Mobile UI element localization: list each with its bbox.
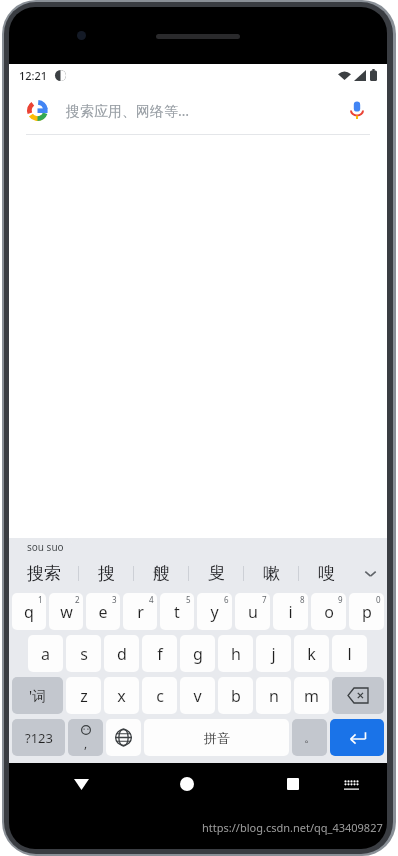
button[interactable]: a — [28, 635, 63, 672]
button[interactable]: , — [68, 719, 103, 756]
staticText: 。 — [304, 730, 316, 745]
button[interactable]: w — [49, 593, 83, 630]
button[interactable]: Enter — [330, 719, 384, 756]
button[interactable]: x — [104, 677, 139, 714]
staticText: 8 — [300, 594, 305, 605]
button[interactable]: 嗖 — [299, 556, 353, 590]
staticText: p — [362, 601, 372, 623]
staticText: o — [324, 601, 334, 623]
button[interactable]: Switch language — [106, 719, 141, 756]
button[interactable]: p — [349, 593, 384, 630]
button[interactable]: h — [218, 635, 253, 672]
staticText: q — [24, 601, 34, 623]
button[interactable]: y — [197, 593, 232, 630]
button[interactable]: Home — [170, 767, 204, 801]
button[interactable]: g — [180, 635, 215, 672]
button[interactable]: 艘 — [134, 556, 188, 590]
staticText: 搜索应用、网络等… — [66, 101, 190, 120]
staticText: 搜索 — [27, 563, 61, 584]
staticText: j — [271, 643, 276, 665]
staticText: 0 — [376, 594, 381, 605]
staticText: r — [137, 601, 144, 623]
staticText: 4 — [149, 594, 154, 605]
button[interactable]: n — [256, 677, 291, 714]
button[interactable]: 叟 — [189, 556, 243, 590]
button[interactable]: z — [66, 677, 101, 714]
staticText: s — [80, 643, 88, 665]
button[interactable]: More candidates — [353, 556, 387, 590]
button[interactable]: o — [311, 593, 346, 630]
staticText: i — [288, 601, 293, 623]
button[interactable]: Hide keyboard — [64, 767, 98, 801]
staticText: f — [157, 643, 163, 665]
button[interactable]: Backspace — [332, 677, 384, 714]
staticText: 搜 — [98, 563, 115, 584]
staticText: 嗽 — [263, 563, 280, 584]
staticText: sou suo — [27, 540, 64, 554]
button[interactable]: i — [273, 593, 308, 630]
staticText: d — [117, 643, 127, 665]
button[interactable]: Recent apps — [276, 767, 310, 801]
staticText: 9 — [338, 594, 343, 605]
staticText: m — [304, 685, 319, 707]
button[interactable]: e — [86, 593, 120, 630]
staticText: 嗖 — [318, 563, 335, 584]
button[interactable]: l — [332, 635, 367, 672]
button[interactable]: q — [12, 593, 46, 630]
staticText: 3 — [112, 594, 117, 605]
button[interactable]: f — [142, 635, 177, 672]
staticText: h — [231, 643, 241, 665]
staticText: t — [174, 601, 180, 623]
staticText: https://blog.csdn.net/qq_43409827 — [202, 820, 383, 835]
button[interactable]: b — [218, 677, 253, 714]
button[interactable]: 。 — [292, 719, 327, 756]
staticText: c — [156, 685, 164, 707]
staticText: n — [269, 685, 279, 707]
button[interactable]: s — [66, 635, 101, 672]
button[interactable]: u — [235, 593, 270, 630]
button[interactable]: k — [294, 635, 329, 672]
button[interactable]: 搜索 — [9, 556, 78, 590]
staticText: 7 — [262, 594, 267, 605]
button[interactable]: v — [180, 677, 215, 714]
staticText: u — [248, 601, 258, 623]
button[interactable]: Change keyboard — [336, 769, 366, 799]
staticText: 5 — [186, 594, 191, 605]
staticText: w — [60, 601, 73, 623]
button[interactable]: r — [123, 593, 157, 630]
button[interactable]: 搜索应用、网络等… — [9, 86, 387, 134]
staticText: z — [80, 685, 88, 707]
staticText: k — [307, 643, 316, 665]
staticText: ?123 — [25, 729, 53, 747]
button[interactable]: Voice search — [345, 98, 369, 122]
button[interactable]: 拼音 — [144, 719, 289, 756]
staticText: g — [193, 643, 203, 665]
staticText: 艘 — [153, 563, 170, 584]
button[interactable]: 搜 — [79, 556, 133, 590]
staticText: b — [231, 685, 241, 707]
staticText: , — [84, 735, 88, 751]
staticText: y — [210, 601, 219, 623]
button[interactable]: c — [142, 677, 177, 714]
staticText: 1 — [38, 594, 43, 605]
staticText: '词 — [29, 686, 47, 705]
staticText: 12:21 — [19, 68, 48, 83]
staticText: l — [347, 643, 352, 665]
staticText: 2 — [75, 594, 80, 605]
staticText: e — [98, 601, 108, 623]
button[interactable]: d — [104, 635, 139, 672]
staticText: a — [41, 643, 50, 665]
button[interactable]: '词 — [12, 677, 63, 714]
button[interactable]: t — [160, 593, 194, 630]
staticText: 拼音 — [204, 730, 230, 746]
staticText: 6 — [224, 594, 229, 605]
button[interactable]: j — [256, 635, 291, 672]
button[interactable]: ?123 — [12, 719, 65, 756]
button[interactable]: 嗽 — [244, 556, 298, 590]
staticText: 叟 — [208, 563, 225, 584]
staticText: v — [193, 685, 202, 707]
button[interactable]: m — [294, 677, 329, 714]
staticText: x — [117, 685, 126, 707]
